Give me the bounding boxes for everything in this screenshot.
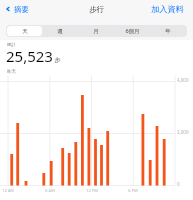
staticText: 年 xyxy=(165,28,171,35)
button[interactable]: 月 xyxy=(78,26,114,36)
staticText: 0 xyxy=(177,181,180,187)
staticText: 天 xyxy=(22,28,28,35)
button[interactable]: 週 xyxy=(42,26,78,36)
staticText: 6 PM xyxy=(128,188,138,193)
staticText: 摘要 xyxy=(14,5,29,14)
staticText: 12 PM xyxy=(86,188,98,193)
button[interactable]: 摘要 xyxy=(3,0,30,18)
staticText: 總計 xyxy=(7,42,16,47)
staticText: 6 AM xyxy=(45,188,55,193)
staticText: 25,523 xyxy=(6,46,53,66)
staticText: 週 xyxy=(57,28,63,35)
button[interactable]: 6個月 xyxy=(114,26,150,36)
staticText: 步行 xyxy=(89,5,104,14)
staticText: 昨天 xyxy=(7,69,17,75)
staticText: 4,000 xyxy=(177,77,189,83)
staticText: 2,000 xyxy=(177,129,189,135)
staticText: 月 xyxy=(93,28,99,35)
staticText: 6個月 xyxy=(125,27,140,35)
staticText: 加入資料 xyxy=(151,4,184,14)
button[interactable]: 加入資料 xyxy=(151,0,193,18)
staticText: 步 xyxy=(53,56,61,64)
staticText: 12 AM xyxy=(2,188,14,193)
button[interactable]: 年 xyxy=(150,26,186,36)
button[interactable]: 天 xyxy=(7,26,42,36)
